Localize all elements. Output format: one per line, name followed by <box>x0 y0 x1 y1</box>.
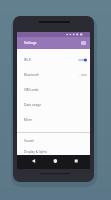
staticText: SIM cards <box>24 88 39 92</box>
staticText: Bluetooth <box>24 73 39 77</box>
button[interactable]: Sound <box>17 133 90 148</box>
button[interactable]: Display & lights <box>17 148 90 155</box>
button[interactable]: More <box>17 112 90 127</box>
button[interactable]: Bluetooth <box>17 67 90 82</box>
staticText: Settings <box>24 41 37 45</box>
button[interactable]: Search <box>81 41 86 45</box>
button[interactable]: SIM cards <box>17 82 90 97</box>
button[interactable]: Home <box>49 155 61 167</box>
staticText: Display & lights <box>24 150 48 154</box>
button[interactable]: Wi-Fi <box>17 52 90 67</box>
staticText: Data usage <box>24 103 41 107</box>
staticText: More <box>24 118 32 122</box>
button[interactable]: Recents <box>70 155 82 167</box>
button[interactable]: Data usage <box>17 97 90 112</box>
staticText: Wi-Fi <box>24 58 32 62</box>
staticText: Sound <box>24 139 34 143</box>
button[interactable]: Back <box>28 155 40 167</box>
